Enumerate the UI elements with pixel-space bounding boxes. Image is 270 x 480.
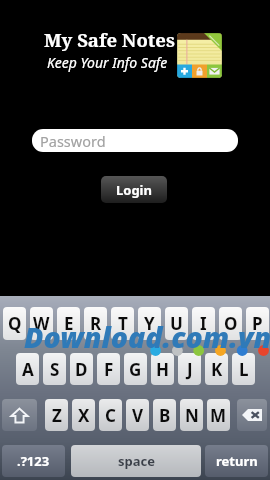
button[interactable]: V <box>126 399 149 431</box>
button[interactable]: A <box>16 353 39 385</box>
button[interactable]: U <box>165 307 188 340</box>
staticText: W <box>33 312 50 335</box>
staticText: Z <box>52 404 62 427</box>
button[interactable]: Z <box>45 399 68 431</box>
staticText: .?123 <box>17 452 50 470</box>
staticText: return <box>216 452 258 470</box>
staticText: B <box>159 404 171 427</box>
staticText: My Safe Notes <box>44 27 175 52</box>
button[interactable]: S <box>43 353 66 385</box>
button[interactable]: G <box>124 353 147 385</box>
button[interactable]: return <box>205 445 268 477</box>
staticText: P <box>252 312 263 335</box>
staticText: M <box>210 404 227 427</box>
staticText: Password <box>40 131 106 151</box>
staticText: Keep Your Info Safe <box>47 53 168 72</box>
staticText: N <box>185 404 199 427</box>
button[interactable]: D <box>70 353 93 385</box>
staticText: space <box>118 452 155 470</box>
button[interactable]: M <box>207 399 230 431</box>
staticText: I <box>200 312 207 335</box>
staticText: Login <box>116 181 152 199</box>
staticText: C <box>105 404 116 427</box>
button[interactable]: F <box>97 353 120 385</box>
staticText: X <box>78 404 90 427</box>
button[interactable]: Y <box>138 307 161 340</box>
staticText: L <box>239 358 249 381</box>
button[interactable]: O <box>219 307 242 340</box>
button[interactable]: J <box>178 353 201 385</box>
button[interactable]: P <box>246 307 269 340</box>
staticText: Download.com.vn <box>24 318 270 357</box>
staticText: K <box>211 358 223 381</box>
button[interactable]: .?123 <box>2 445 65 477</box>
button[interactable]: K <box>205 353 228 385</box>
button[interactable]: Backspace <box>237 399 267 431</box>
staticText: G <box>129 358 142 381</box>
button[interactable]: I <box>192 307 215 340</box>
staticText: O <box>224 312 238 335</box>
staticText: U <box>170 312 183 335</box>
button[interactable]: E <box>57 307 80 340</box>
staticText: V <box>132 404 144 427</box>
button[interactable]: L <box>232 353 255 385</box>
staticText: R <box>90 312 102 335</box>
button[interactable]: H <box>151 353 174 385</box>
staticText: F <box>104 358 114 381</box>
button[interactable]: Password <box>32 129 238 152</box>
button[interactable]: C <box>99 399 122 431</box>
staticText: J <box>187 358 193 381</box>
staticText: Y <box>144 312 155 335</box>
button[interactable]: Q <box>3 307 26 340</box>
staticText: A <box>22 358 34 381</box>
staticText: S <box>50 358 60 381</box>
button[interactable]: W <box>30 307 53 340</box>
staticText: Q <box>8 312 22 335</box>
button[interactable]: X <box>72 399 95 431</box>
button[interactable]: Shift <box>2 399 37 431</box>
button[interactable]: Login <box>101 176 167 203</box>
button[interactable]: B <box>153 399 176 431</box>
staticText: E <box>64 312 74 335</box>
button[interactable]: T <box>111 307 134 340</box>
button[interactable]: R <box>84 307 107 340</box>
button[interactable]: N <box>180 399 203 431</box>
staticText: H <box>156 358 170 381</box>
button[interactable]: My Safe Notes icon <box>177 33 222 78</box>
staticText: D <box>75 358 88 381</box>
staticText: T <box>118 312 128 335</box>
button[interactable]: space <box>71 445 201 477</box>
